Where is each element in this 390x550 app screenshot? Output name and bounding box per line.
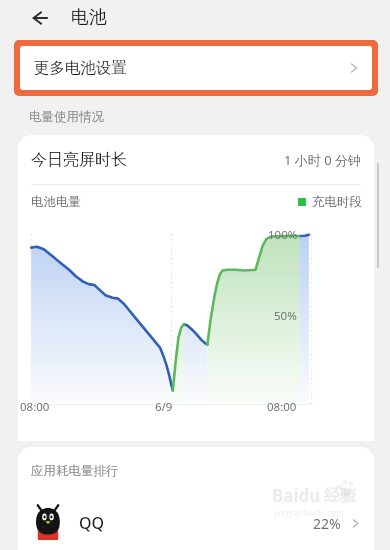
staticText: 1 小时 0 分钟 [284, 151, 362, 169]
staticText: 22% [313, 514, 341, 533]
button[interactable]: 今日亮屏时长 [18, 135, 374, 184]
staticText: 电量使用情况 [29, 109, 104, 125]
staticText: 50% [274, 308, 297, 324]
staticText: 应用耗电量排行 [31, 463, 119, 479]
staticText: 经验 [324, 486, 356, 506]
staticText: Baidu [272, 484, 321, 507]
staticText: 电池 [71, 6, 107, 29]
button[interactable]: Back [21, 0, 57, 36]
staticText: 08:00 [267, 399, 297, 415]
button[interactable]: 更多电池设置 [20, 46, 372, 90]
staticText: QQ [79, 512, 105, 534]
staticText: 今日亮屏时长 [31, 150, 127, 170]
staticText: 更多电池设置 [34, 58, 127, 78]
staticText: jingyan.baidu.com [274, 507, 344, 518]
staticText: 电池电量 [31, 194, 81, 210]
staticText: 08:00 [20, 399, 50, 415]
staticText: 充电时段 [312, 194, 362, 210]
staticText: 100% [268, 227, 298, 243]
staticText: 6/9 [155, 399, 173, 415]
button[interactable]: QQ [18, 495, 374, 550]
